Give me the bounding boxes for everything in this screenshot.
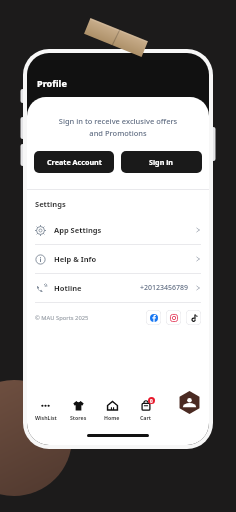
staticText: Create Account	[47, 157, 102, 167]
button[interactable]: Sign in	[121, 151, 202, 173]
button[interactable]: Profile	[178, 391, 201, 414]
button[interactable]: Hotline	[27, 274, 209, 302]
staticText: © MAU Sports 2025	[35, 314, 89, 322]
staticText: +20123456789	[140, 283, 189, 293]
staticText: WishList	[35, 414, 57, 421]
staticText: Cart	[140, 414, 152, 421]
button[interactable]: Stores	[62, 398, 95, 421]
button[interactable]: Create Account	[34, 151, 114, 173]
staticText: Sign in	[149, 157, 174, 167]
button[interactable]: TikTok	[186, 310, 201, 325]
button[interactable]: Home	[95, 398, 129, 421]
staticText: Hotline	[54, 283, 82, 293]
staticText: Settings	[35, 199, 66, 209]
button[interactable]: Facebook	[146, 310, 161, 325]
staticText: Sign in to receive exclusive offers and …	[51, 116, 185, 139]
staticText: App Settings	[54, 225, 102, 235]
button[interactable]: 0	[129, 398, 163, 421]
staticText: Stores	[70, 414, 87, 421]
staticText: Home	[104, 414, 120, 421]
button[interactable]: App Settings	[27, 216, 209, 244]
button[interactable]: WishList	[29, 398, 62, 421]
button[interactable]: Instagram	[166, 310, 181, 325]
staticText: Help & Info	[54, 254, 97, 264]
button[interactable]: Help & Info	[27, 245, 209, 273]
staticText: Profile	[37, 77, 67, 89]
staticText: 0	[150, 398, 153, 404]
